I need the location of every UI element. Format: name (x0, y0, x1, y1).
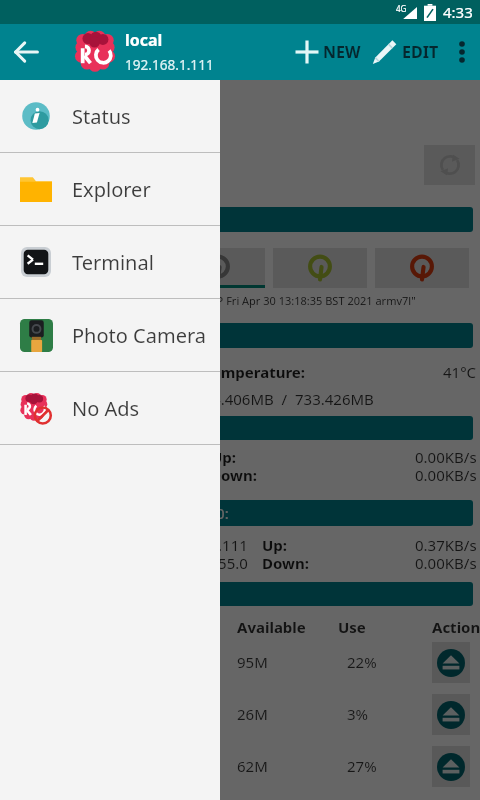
staticText: Up: (211, 447, 237, 467)
button[interactable]: No Ads (0, 372, 220, 444)
staticText: Down: (262, 553, 309, 573)
staticText: 41°C (443, 362, 477, 382)
staticText: Use (338, 617, 366, 637)
staticText: Terminal (72, 249, 154, 276)
staticText: 0.37KB/s (415, 535, 477, 555)
staticText: 255.255.255.0 (150, 553, 248, 573)
button[interactable]: More options (443, 24, 480, 80)
staticText: eth0: (15, 418, 51, 438)
staticText: Status (72, 103, 131, 130)
staticText: Up: (262, 535, 288, 555)
staticText: No Ads (72, 395, 140, 422)
button[interactable]: Photo Camera (0, 299, 220, 371)
button[interactable]: Power action (171, 248, 265, 288)
staticText: Action (432, 617, 480, 637)
staticText: 0.00KB/s (415, 465, 477, 485)
staticText: 0.00KB/s (415, 447, 477, 467)
button[interactable]: NEW (294, 24, 361, 80)
staticText: NEW (323, 41, 361, 63)
button[interactable]: Power action (375, 248, 469, 288)
staticText: CPU Temperature: (170, 362, 306, 382)
staticText: 192.168.1.111 (150, 535, 248, 555)
staticText: Down: (210, 465, 257, 485)
staticText: 4:33 (443, 2, 473, 22)
staticText: EDIT (402, 41, 439, 63)
staticText: 4G (396, 3, 407, 14)
staticText: 27% (347, 756, 437, 776)
staticText: /dev/root (12, 704, 237, 724)
staticText: CPU: (15, 326, 49, 346)
button[interactable]: Power action (273, 248, 367, 288)
button[interactable]: Terminal (0, 226, 220, 298)
button[interactable]: Eject (432, 746, 470, 787)
staticText: Linux raspberrypi 5.10.17-v7+ #1414 SMP … (10, 293, 416, 308)
button[interactable]: Power action (68, 248, 163, 288)
button[interactable]: Status (0, 80, 220, 152)
staticText: /dev/root (12, 652, 237, 672)
button[interactable]: Back (4, 24, 48, 80)
staticText: 62M (237, 756, 340, 776)
staticText: /dev/root (12, 756, 237, 776)
button[interactable]: Eject (432, 694, 470, 735)
staticText: Memory: 234.406MB / 733.426MB (128, 389, 374, 409)
staticText: Available (237, 617, 306, 637)
button[interactable]: Eject (432, 642, 470, 683)
staticText: General: (15, 210, 75, 230)
staticText: Explorer (72, 176, 151, 203)
staticText: 192.168.1.111 (125, 55, 214, 74)
staticText: 22% (347, 652, 437, 672)
button[interactable]: Explorer (0, 153, 220, 225)
staticText: 0.00KB/s (415, 553, 477, 573)
staticText: 95M (237, 652, 340, 672)
staticText: 3% (347, 704, 437, 724)
staticText: Network informations - wlan0: (15, 503, 229, 523)
staticText: local (125, 29, 163, 51)
staticText: Photo Camera (72, 322, 206, 349)
staticText: 26M (237, 704, 340, 724)
button[interactable]: EDIT (370, 24, 439, 80)
